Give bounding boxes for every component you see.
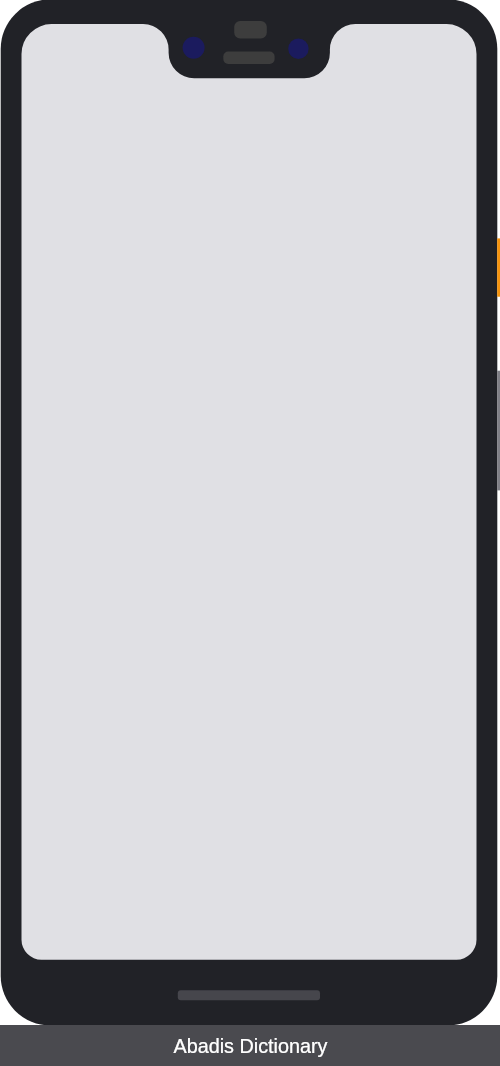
staticText: Abadis Dictionary	[173, 1035, 328, 1057]
button[interactable]: Phone device illustration	[0, 0, 500, 1025]
button[interactable]: Abadis Dictionary	[0, 1025, 500, 1066]
